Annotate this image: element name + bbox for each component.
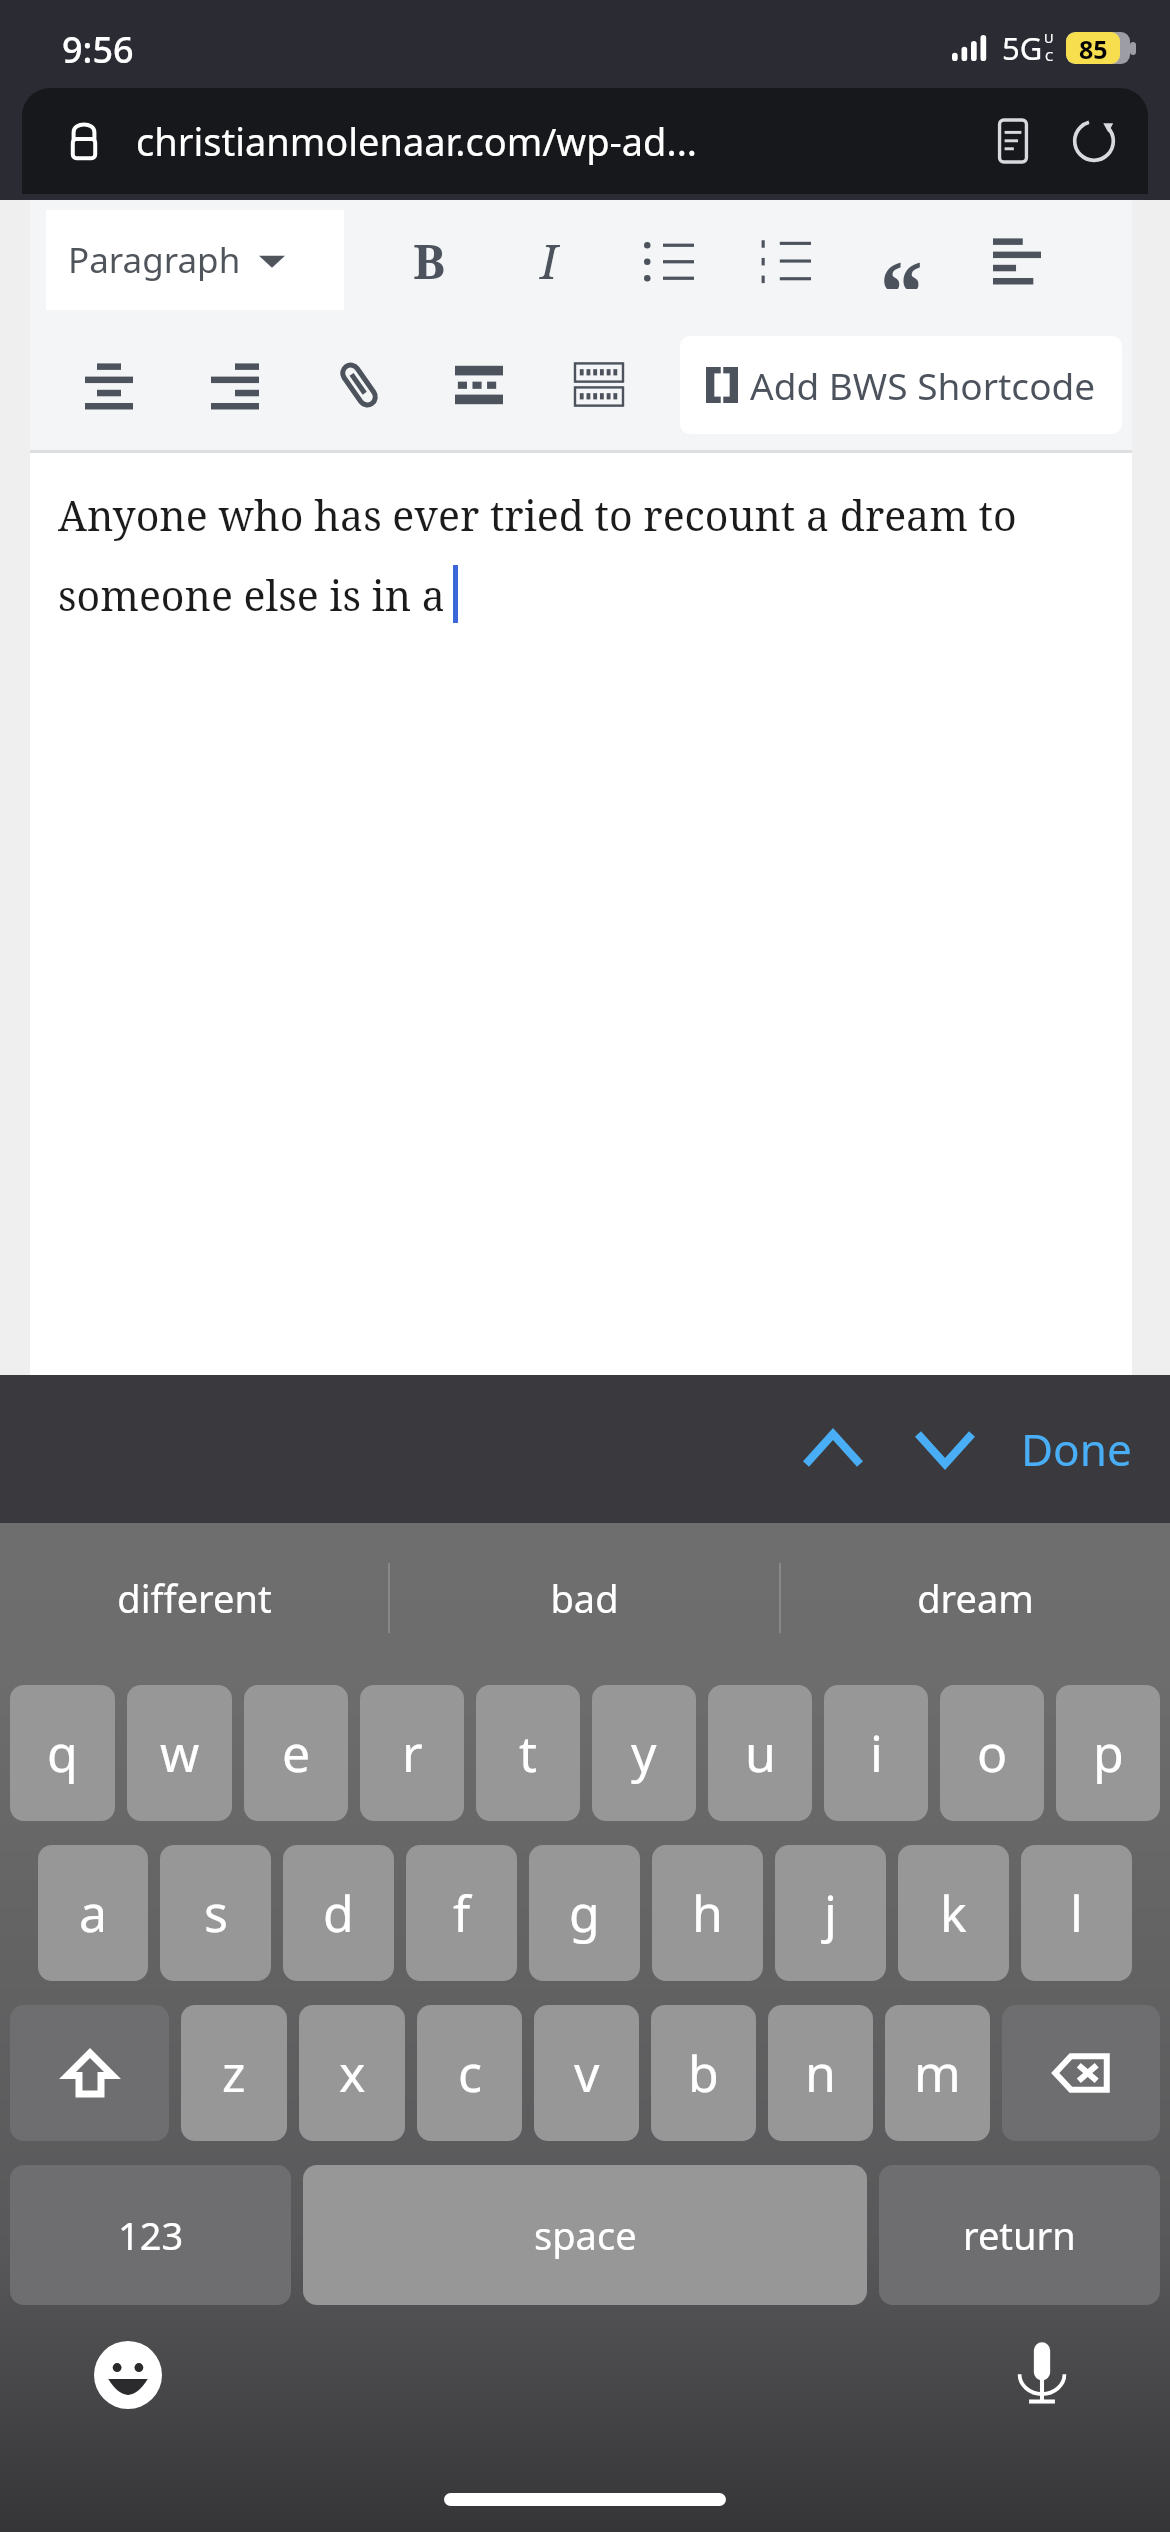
button[interactable]: Bold [392, 223, 466, 297]
staticText: e [282, 1719, 311, 1787]
button[interactable]: Secure [22, 88, 1148, 194]
button[interactable]: 123 [10, 2165, 291, 2305]
button[interactable]: m [885, 2005, 990, 2141]
staticText: i [870, 1719, 883, 1787]
button[interactable]: x [299, 2005, 405, 2141]
staticText: j [824, 1879, 837, 1947]
button[interactable]: l [1021, 1845, 1132, 1981]
staticText: f [453, 1879, 471, 1947]
button[interactable]: i [824, 1685, 928, 1821]
staticText: n [805, 2039, 836, 2107]
staticText: Anyone who has ever tried to recount a d… [58, 487, 1017, 543]
button[interactable]: v [534, 2005, 639, 2141]
staticText: q [47, 1719, 78, 1787]
staticText: someone else is in a [58, 567, 445, 623]
button[interactable]: Paragraph [46, 210, 344, 310]
staticText: l [1070, 1879, 1083, 1947]
button[interactable]: Reload [1052, 99, 1136, 183]
staticText: 123 [118, 2209, 184, 2261]
staticText: Add BWS Shortcode [750, 360, 1096, 410]
button[interactable]: f [406, 1845, 517, 1981]
button[interactable]: bad [390, 1523, 779, 1673]
button[interactable]: p [1056, 1685, 1160, 1821]
button[interactable]: Next field [895, 1399, 995, 1499]
staticText: k [940, 1879, 967, 1947]
button[interactable]: Align left [980, 223, 1054, 297]
staticText: t [519, 1719, 538, 1787]
button[interactable]: Numbered list [748, 223, 822, 297]
staticText: bad [550, 1572, 619, 1624]
button[interactable]: Align center [72, 348, 146, 422]
button[interactable]: w [127, 1685, 232, 1821]
button[interactable]: Previous field [783, 1399, 883, 1499]
button[interactable]: a [38, 1845, 148, 1981]
button[interactable]: return [879, 2165, 1160, 2305]
staticText: Paragraph [68, 236, 241, 284]
button[interactable]: r [360, 1685, 464, 1821]
staticText: g [569, 1879, 600, 1947]
button[interactable]: k [898, 1845, 1009, 1981]
staticText: 85 [1079, 32, 1108, 64]
staticText: c [458, 2039, 482, 2107]
button[interactable]: d [283, 1845, 394, 1981]
button[interactable]: Read more [442, 348, 516, 422]
staticText: v [574, 2039, 600, 2107]
staticText: x [339, 2039, 366, 2107]
button[interactable]: u [708, 1685, 812, 1821]
button[interactable]: s [160, 1845, 271, 1981]
button[interactable]: Add BWS Shortcode [680, 336, 1122, 434]
staticText: r [402, 1719, 423, 1787]
button[interactable]: Emoji [86, 2333, 170, 2417]
button[interactable]: Reader view [974, 102, 1052, 180]
button[interactable]: Italic [512, 223, 586, 297]
button[interactable]: Toggle toolbar [562, 348, 636, 422]
button[interactable]: Backspace [1002, 2005, 1160, 2141]
button[interactable]: t [476, 1685, 580, 1821]
staticText: d [323, 1879, 354, 1947]
staticText: 5G [1002, 27, 1043, 69]
staticText: space [534, 2209, 637, 2261]
staticText: u [745, 1719, 776, 1787]
button[interactable]: Shift [10, 2005, 169, 2141]
staticText: B [413, 228, 446, 293]
button[interactable]: z [181, 2005, 287, 2141]
button[interactable]: g [529, 1845, 640, 1981]
button[interactable]: Align right [198, 348, 272, 422]
button[interactable]: n [768, 2005, 873, 2141]
staticText: return [963, 2209, 1076, 2261]
staticText: z [222, 2039, 246, 2107]
button[interactable]: o [940, 1685, 1044, 1821]
staticText: o [977, 1719, 1008, 1787]
staticText: christianmolenaar.com/wp-ad... [136, 115, 974, 167]
button[interactable]: different [0, 1523, 388, 1673]
staticText: different [117, 1572, 272, 1624]
button[interactable]: Voice input [1000, 2333, 1084, 2417]
button[interactable]: space [303, 2165, 867, 2305]
staticText: y [631, 1719, 657, 1787]
staticText: p [1093, 1719, 1124, 1787]
staticText: w [160, 1719, 200, 1787]
staticText: I [540, 228, 558, 293]
staticText: C [1045, 47, 1054, 65]
staticText: “ [879, 231, 924, 289]
other: Secure [58, 115, 110, 167]
button[interactable]: y [592, 1685, 696, 1821]
staticText: b [688, 2039, 719, 2107]
button[interactable]: h [652, 1845, 763, 1981]
button[interactable]: Bulleted list [632, 223, 706, 297]
staticText: a [79, 1879, 108, 1947]
staticText: U [1044, 29, 1054, 47]
button[interactable]: Insert link [322, 348, 396, 422]
button[interactable]: e [244, 1685, 348, 1821]
staticText: 9:56 [62, 25, 134, 74]
button[interactable]: Blockquote [864, 223, 938, 297]
button[interactable]: dream [781, 1523, 1170, 1673]
button[interactable]: Done [1011, 1403, 1142, 1495]
staticText: m [914, 2039, 961, 2107]
button[interactable]: c [417, 2005, 522, 2141]
button[interactable]: q [10, 1685, 115, 1821]
staticText: dream [917, 1572, 1034, 1624]
button[interactable]: j [775, 1845, 886, 1981]
staticText: h [692, 1879, 723, 1947]
button[interactable]: b [651, 2005, 756, 2141]
